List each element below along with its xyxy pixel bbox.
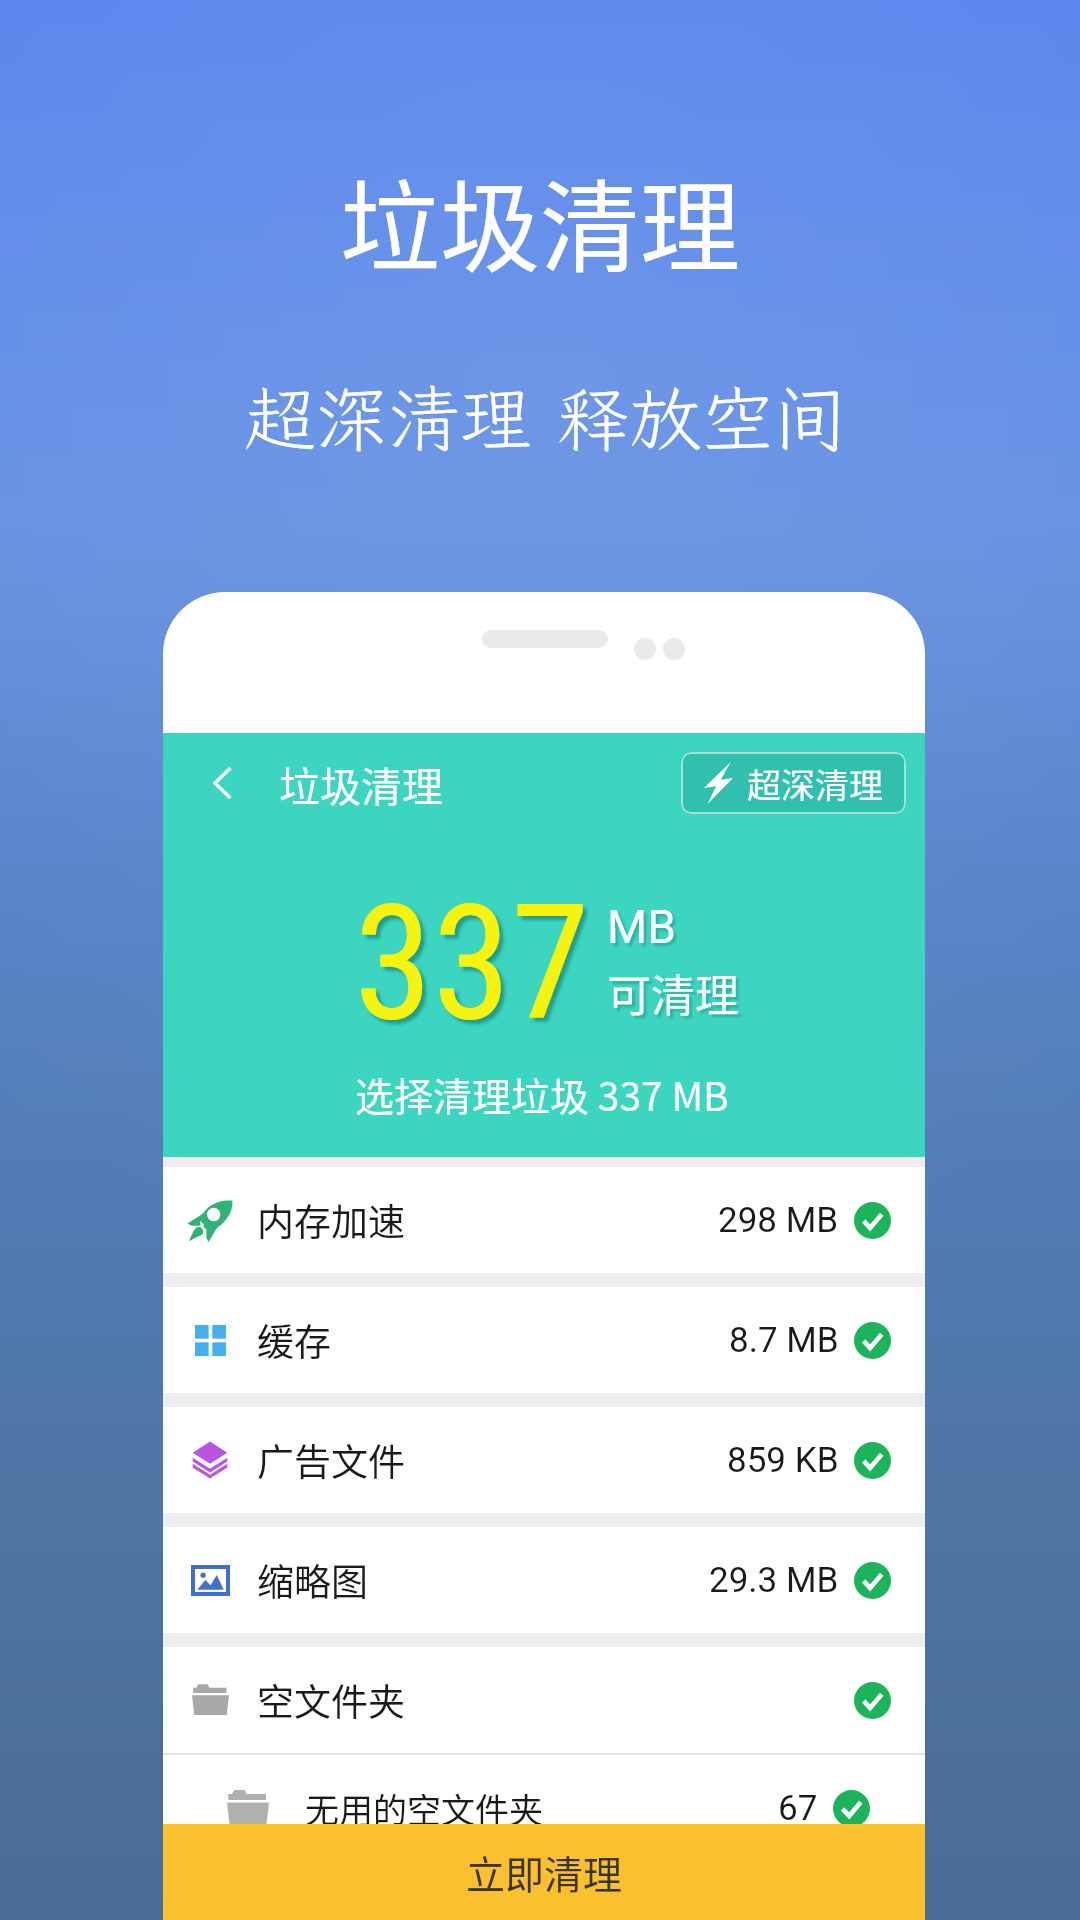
staticText: 立即清理	[466, 1844, 623, 1900]
staticText: 内存加速	[257, 1193, 405, 1247]
staticText: 空文件夹	[257, 1673, 405, 1727]
staticText: 29.3 MB	[709, 1560, 839, 1601]
staticText: 超深清理	[747, 759, 883, 808]
staticText: 8.7 MB	[729, 1320, 839, 1361]
staticText: 垃圾清理	[279, 754, 443, 813]
staticText: 广告文件	[257, 1433, 405, 1487]
button[interactable]: 内存加速	[163, 1167, 925, 1273]
button[interactable]: 缓存	[163, 1287, 925, 1393]
staticText: 67	[778, 1788, 818, 1829]
button[interactable]: 立即清理	[163, 1824, 925, 1920]
button[interactable]: 缩略图	[163, 1527, 925, 1633]
staticText: 可清理	[607, 961, 739, 1025]
button[interactable]: Back	[188, 749, 256, 817]
staticText: 337	[354, 870, 590, 1056]
button[interactable]: 广告文件	[163, 1407, 925, 1513]
staticText: 298 MB	[718, 1200, 839, 1241]
staticText: MB	[607, 900, 676, 954]
button[interactable]: 空文件夹	[163, 1647, 925, 1753]
staticText: 无用的空文件夹	[305, 1784, 543, 1833]
staticText: 选择清理垃圾 337 MB	[355, 1066, 729, 1122]
staticText: 859 KB	[727, 1440, 839, 1481]
staticText: 缩略图	[257, 1553, 368, 1607]
staticText: 垃圾清理	[340, 148, 740, 293]
button[interactable]: 无用的空文件夹	[163, 1755, 925, 1861]
staticText: 超深清理 释放空间	[244, 371, 846, 466]
staticText: 缓存	[257, 1313, 331, 1367]
button[interactable]: 超深清理	[681, 752, 906, 814]
